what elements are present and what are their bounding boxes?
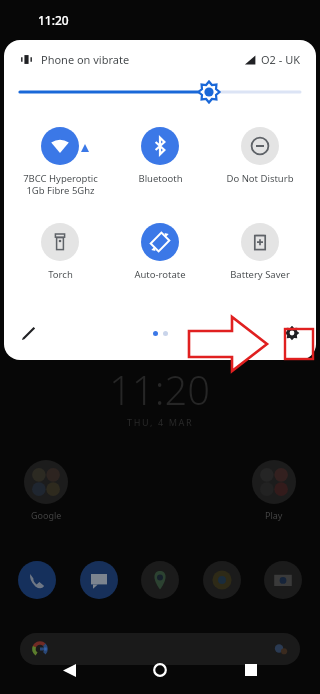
button[interactable]: App 4 — [264, 561, 302, 599]
button[interactable]: Bluetooth — [110, 125, 210, 187]
button[interactable]: Settings — [278, 319, 306, 347]
button[interactable]: Do Not Disturb — [210, 125, 310, 187]
button[interactable]: Home — [143, 653, 177, 687]
staticText: Bluetooth — [138, 172, 183, 185]
button[interactable] — [24, 460, 68, 504]
staticText: Auto-rotate — [134, 268, 186, 281]
button[interactable]: App 2 — [141, 561, 179, 599]
staticText: O2 - UK — [261, 52, 300, 67]
button[interactable]: Battery Saver — [210, 221, 310, 283]
staticText: Do Not Disturb — [226, 172, 294, 185]
staticText: 11:20 — [109, 362, 211, 410]
staticText: Torch — [48, 268, 73, 281]
staticText: 11:20 — [38, 12, 69, 28]
button[interactable]: Torch — [10, 221, 110, 283]
button[interactable]: App 1 — [80, 561, 118, 599]
button[interactable]: App 3 — [203, 561, 241, 599]
staticText: Battery Saver — [230, 268, 290, 281]
button[interactable]: Edit tiles — [14, 319, 42, 347]
button[interactable]: 7BCC Hyperoptic 1Gb Fibre 5Ghz — [10, 125, 110, 199]
button[interactable]: Recent apps — [234, 653, 268, 687]
button[interactable]: Back — [52, 653, 86, 687]
staticText: THU, 4 MAR — [127, 416, 194, 428]
staticText: Phone on vibrate — [41, 52, 130, 67]
staticText: Google — [31, 509, 62, 521]
button[interactable]: Auto-rotate — [110, 221, 210, 283]
button[interactable]: App 0 — [18, 561, 56, 599]
button[interactable]: Google search — [20, 633, 300, 665]
button[interactable] — [252, 460, 296, 504]
staticText: 7BCC Hyperoptic 1Gb Fibre 5Ghz — [23, 172, 98, 197]
staticText: Play — [265, 509, 283, 521]
button[interactable]: Brightness — [20, 81, 300, 103]
